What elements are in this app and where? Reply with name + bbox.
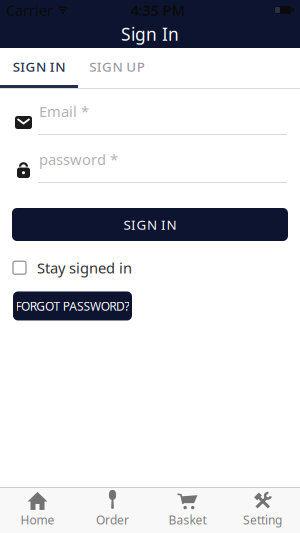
staticText: Home xyxy=(20,512,54,528)
button[interactable]: Basket xyxy=(150,488,225,533)
staticText: password * xyxy=(39,149,118,169)
button[interactable]: Setting xyxy=(225,488,300,533)
button[interactable]: FORGOT PASSWORD? xyxy=(13,291,132,320)
staticText: Order xyxy=(96,512,129,528)
staticText: SIGN IN xyxy=(13,58,65,75)
staticText: Sign In xyxy=(121,22,179,45)
button[interactable]: Home xyxy=(0,488,75,533)
staticText: Basket xyxy=(168,512,206,528)
button[interactable]: SIGN IN xyxy=(0,48,78,88)
button[interactable]: Order xyxy=(75,488,150,533)
staticText: SIGN IN xyxy=(123,216,176,233)
button[interactable]: Stay signed in xyxy=(0,258,300,277)
staticText: Email * xyxy=(39,101,89,121)
staticText: FORGOT PASSWORD? xyxy=(15,298,129,314)
staticText: Stay signed in xyxy=(37,258,132,277)
button[interactable]: SIGN IN xyxy=(0,208,300,241)
staticText: Setting xyxy=(243,512,282,528)
staticText: Carrier xyxy=(6,0,53,20)
button[interactable]: SIGN UP xyxy=(78,48,156,88)
staticText: 4:35 PM xyxy=(130,0,185,20)
staticText: SIGN UP xyxy=(89,58,145,75)
